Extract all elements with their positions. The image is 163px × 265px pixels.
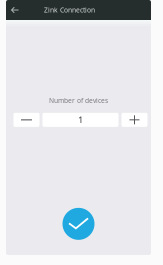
button[interactable]: Increase number of devices — [121, 113, 147, 127]
staticText: Number of devices — [49, 96, 108, 105]
button[interactable]: Decrease number of devices — [13, 113, 39, 127]
staticText: 1 — [78, 114, 83, 126]
staticText: Zink Connection — [44, 6, 95, 14]
button[interactable]: Back — [6, 0, 24, 20]
button[interactable]: Confirm — [62, 208, 94, 240]
